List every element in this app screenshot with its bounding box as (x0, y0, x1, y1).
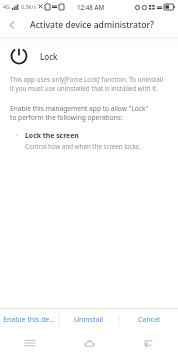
button[interactable]: Cancel (119, 309, 178, 331)
staticText: Control how and when the screen locks. (25, 142, 141, 150)
staticText: Enable this de... (3, 315, 55, 325)
button[interactable]: Recent apps (10, 331, 50, 355)
staticText: 4G (3, 3, 10, 10)
staticText: Cancel (138, 315, 160, 325)
button[interactable]: Home (69, 331, 109, 355)
button[interactable]: Back (0, 13, 24, 37)
button[interactable]: Enable this de... (0, 309, 58, 331)
staticText: Lock the screen (25, 131, 79, 140)
staticText: Enable this management app to allow "Loc… (10, 104, 149, 122)
staticText: 12:48 AM (77, 3, 105, 11)
staticText: 0.3K/s (21, 3, 36, 10)
staticText: Uninstall (74, 315, 103, 325)
button[interactable]: Back (128, 331, 168, 355)
staticText: This app uses only[Force Lock] function.… (10, 75, 164, 93)
button[interactable]: Uninstall (59, 309, 118, 331)
staticText: Lock (40, 51, 58, 62)
staticText: Activate device administrator? (30, 19, 154, 31)
